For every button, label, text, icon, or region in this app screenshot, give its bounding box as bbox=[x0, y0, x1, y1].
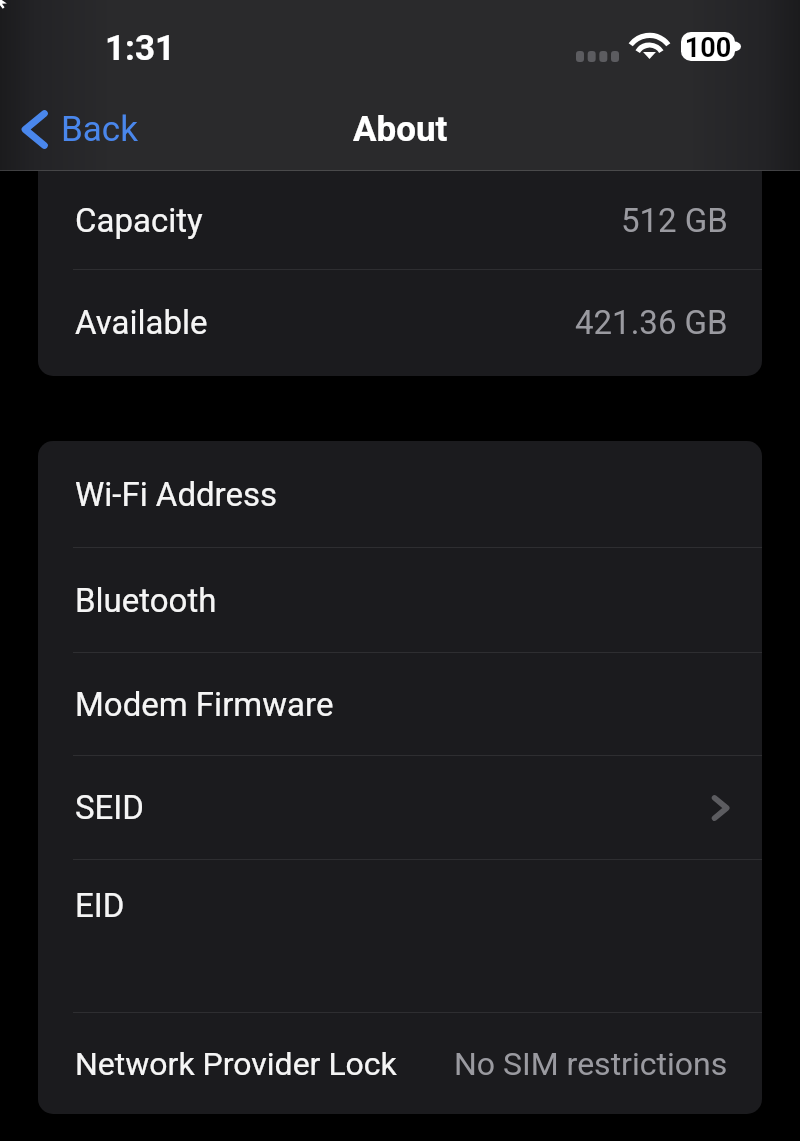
staticText: Capacity bbox=[75, 201, 203, 240]
button[interactable]: EID bbox=[38, 860, 762, 1012]
staticText: 100 bbox=[681, 32, 735, 61]
button[interactable]: Wi-Fi Address bbox=[38, 441, 762, 547]
button[interactable]: Capacity bbox=[38, 171, 762, 269]
staticText: About bbox=[353, 109, 448, 150]
staticText: Modem Firmware bbox=[75, 685, 334, 724]
button[interactable]: SEID bbox=[38, 756, 762, 859]
button[interactable]: Back bbox=[0, 90, 156, 171]
staticText: Network Provider Lock bbox=[75, 1045, 397, 1083]
staticText: EID bbox=[75, 886, 125, 925]
staticText: Back bbox=[61, 109, 138, 150]
other: Back bbox=[22, 111, 46, 148]
staticText: 1:31 bbox=[105, 28, 176, 69]
button[interactable]: Network Provider Lock bbox=[38, 1013, 762, 1114]
staticText: Wi-Fi Address bbox=[75, 475, 278, 514]
button[interactable]: Available bbox=[38, 270, 762, 375]
staticText: Available bbox=[75, 303, 208, 342]
staticText: Bluetooth bbox=[75, 581, 217, 620]
staticText: SEID bbox=[75, 788, 144, 827]
staticText: 421.36 GB bbox=[575, 303, 728, 342]
other: More bbox=[712, 797, 728, 819]
staticText: No SIM restrictions bbox=[454, 1045, 728, 1083]
button[interactable]: Modem Firmware bbox=[38, 653, 762, 755]
button[interactable]: Bluetooth bbox=[38, 548, 762, 652]
staticText: 512 GB bbox=[621, 201, 728, 240]
